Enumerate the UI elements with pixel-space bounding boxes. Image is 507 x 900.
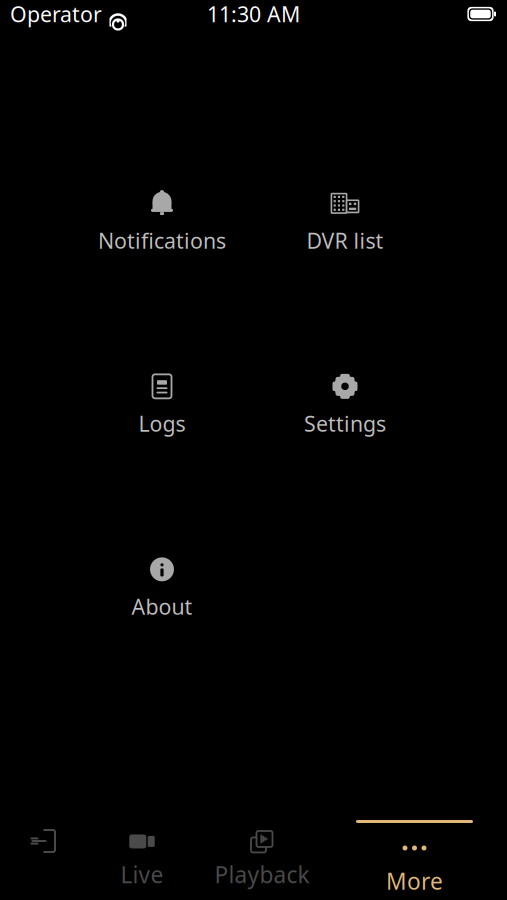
staticText: More (386, 866, 443, 896)
button[interactable]: Notifications (74, 182, 249, 262)
button[interactable]: Settings (257, 365, 432, 445)
staticText: 11:30 AM (207, 0, 300, 28)
staticText: Notifications (98, 226, 226, 255)
button[interactable]: Logs (74, 365, 249, 445)
staticText: Playback (214, 859, 309, 889)
button[interactable]: Playback (202, 824, 322, 896)
button[interactable]: DVR list (257, 182, 432, 262)
staticText: Operator (10, 0, 102, 28)
staticText: About (131, 592, 192, 621)
staticText: Logs (138, 409, 185, 438)
button[interactable]: Log out (0, 824, 82, 896)
staticText: Live (120, 859, 163, 889)
button[interactable]: About (74, 548, 249, 628)
staticText: DVR list (306, 226, 383, 255)
staticText: Settings (304, 409, 386, 438)
button[interactable]: More (322, 820, 507, 900)
button[interactable]: Live (82, 824, 202, 896)
